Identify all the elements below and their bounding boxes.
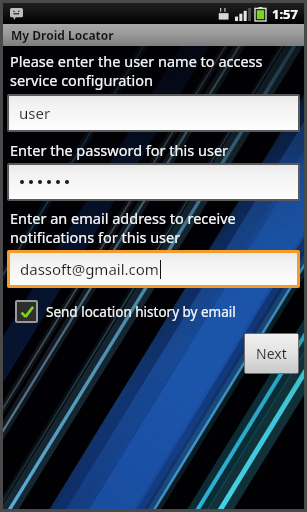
staticText: My Droid Locator (11, 27, 114, 43)
staticText: dassoft@gmail.com (20, 259, 159, 279)
button[interactable] (9, 165, 298, 199)
button[interactable]: Next (245, 334, 298, 373)
staticText: 1:57 (272, 5, 298, 23)
staticText: Enter the password for this user (10, 140, 300, 160)
button[interactable]: dassoft@gmail.com (10, 253, 297, 285)
staticText: Send location history by email (46, 303, 236, 321)
staticText: Next (256, 344, 287, 363)
button[interactable]: user (9, 96, 298, 130)
staticText: Please enter the user name to access ser… (10, 51, 300, 90)
staticText: Enter an email address to receive notifi… (10, 208, 300, 247)
button[interactable]: Send location history by email (15, 300, 236, 323)
staticText: user (19, 103, 51, 123)
